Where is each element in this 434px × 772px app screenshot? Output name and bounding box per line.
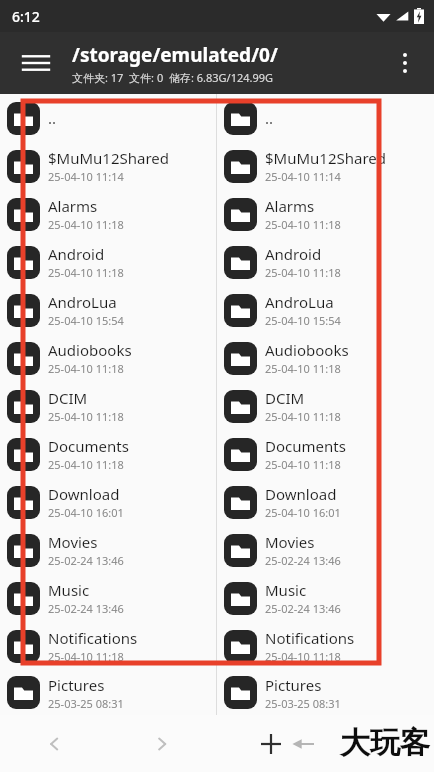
staticText: 6:12 [12,7,40,26]
staticText: 25-04-10 11:18 [48,361,124,376]
button[interactable]: AndroLua [0,286,216,334]
staticText: Movies [48,532,98,552]
staticText: 25-04-10 11:14 [48,169,124,184]
staticText: .. [48,108,57,128]
staticText: Pictures [265,675,322,695]
staticText: DCIM [48,388,88,408]
staticText: Download [48,484,120,504]
button[interactable]: Pictures [217,670,434,715]
button[interactable]: Movies [217,526,434,574]
staticText: Movies [265,532,315,552]
staticText: 25-04-10 11:18 [265,217,341,232]
staticText: 25-04-10 11:14 [265,169,341,184]
button[interactable]: DCIM [0,382,216,430]
staticText: Alarms [48,196,98,216]
staticText: 25-04-10 16:01 [48,505,124,520]
button[interactable]: Music [0,574,216,622]
staticText: 25-04-10 11:18 [48,265,124,280]
button[interactable]: Android [217,238,434,286]
button[interactable]: More options [382,40,428,86]
staticText: 25-04-10 11:18 [265,265,341,280]
staticText: 25-03-25 08:31 [265,696,341,711]
staticText: 25-04-10 11:18 [48,457,124,472]
staticText: $MuMu12Shared [265,148,386,168]
button[interactable]: Documents [217,430,434,478]
staticText: Download [265,484,337,504]
staticText: 25-02-24 13:46 [265,601,341,616]
staticText: AndroLua [48,292,117,312]
button[interactable]: Movies [0,526,216,574]
staticText: .. [265,108,274,128]
staticText: 25-04-10 15:54 [265,313,341,328]
staticText: Notifications [48,628,138,648]
staticText: Documents [48,436,129,456]
button[interactable]: Add [216,715,325,772]
button[interactable]: $MuMu12Shared [217,142,434,190]
button[interactable]: Forward [108,715,216,772]
button[interactable]: $MuMu12Shared [0,142,216,190]
staticText: Alarms [265,196,315,216]
button[interactable]: Documents [0,430,216,478]
staticText: Android [265,244,322,264]
staticText: Documents [265,436,346,456]
staticText: Audiobooks [48,340,132,360]
staticText: 25-04-10 16:01 [265,505,341,520]
staticText: 25-04-10 11:18 [48,409,124,424]
button[interactable]: AndroLua [217,286,434,334]
staticText: 25-02-24 13:46 [265,553,341,568]
staticText: Music [48,580,90,600]
staticText: $MuMu12Shared [48,148,169,168]
staticText: Audiobooks [265,340,349,360]
button[interactable]: Notifications [217,622,434,670]
staticText: 文件夹: 17 文件: 0 储存: 6.83G/124.99G [72,70,274,85]
button[interactable]: Alarms [217,190,434,238]
button[interactable]: Alarms [0,190,216,238]
button[interactable]: Notifications [0,622,216,670]
button[interactable]: DCIM [217,382,434,430]
staticText: 25-02-24 13:46 [48,553,124,568]
staticText: 25-04-10 15:54 [48,313,124,328]
button[interactable]: Download [0,478,216,526]
staticText: 25-04-10 11:18 [265,649,341,664]
button[interactable]: Menu [10,37,62,89]
staticText: 25-04-10 11:18 [265,457,341,472]
button[interactable]: Music [217,574,434,622]
staticText: Pictures [48,675,105,695]
button[interactable]: Audiobooks [217,334,434,382]
button[interactable]: Audiobooks [0,334,216,382]
staticText: 25-03-25 08:31 [48,696,124,711]
button[interactable]: Back [0,715,108,772]
button[interactable]: Pictures [0,670,216,715]
staticText: 大玩客 [340,724,430,762]
button[interactable]: Download [217,478,434,526]
staticText: DCIM [265,388,305,408]
button[interactable]: .. [217,94,434,142]
staticText: 25-04-10 11:18 [48,217,124,232]
button[interactable]: Android [0,238,216,286]
staticText: AndroLua [265,292,334,312]
staticText: 25-04-10 11:18 [48,649,124,664]
staticText: Notifications [265,628,355,648]
staticText: /storage/emulated/0/ [72,42,278,68]
staticText: 25-04-10 11:18 [265,361,341,376]
staticText: 25-04-10 11:18 [265,409,341,424]
staticText: Android [48,244,105,264]
staticText: 25-02-24 13:46 [48,601,124,616]
button[interactable]: .. [0,94,216,142]
staticText: Music [265,580,307,600]
